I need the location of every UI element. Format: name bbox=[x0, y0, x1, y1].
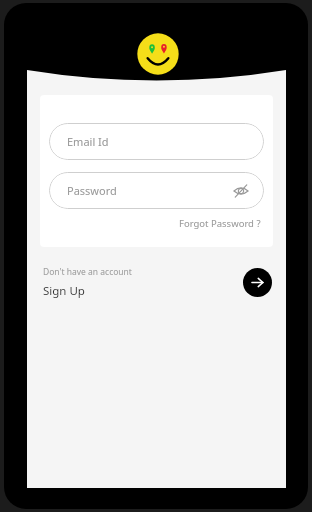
staticText: Forgot Password ? bbox=[179, 217, 261, 230]
staticText: Password bbox=[67, 183, 117, 198]
button[interactable]: Password bbox=[49, 172, 264, 209]
button[interactable]: Sign up, continue bbox=[243, 268, 272, 297]
button[interactable]: Email Id bbox=[49, 123, 264, 160]
staticText: Email Id bbox=[67, 134, 109, 149]
button[interactable]: App logo bbox=[136, 32, 180, 76]
button[interactable]: Forgot Password ? bbox=[177, 215, 263, 232]
staticText: Sign Up bbox=[43, 283, 85, 299]
button[interactable]: Show password bbox=[232, 182, 250, 200]
button[interactable]: Don't have an account bbox=[43, 264, 243, 301]
staticText: Don't have an account bbox=[43, 266, 132, 278]
